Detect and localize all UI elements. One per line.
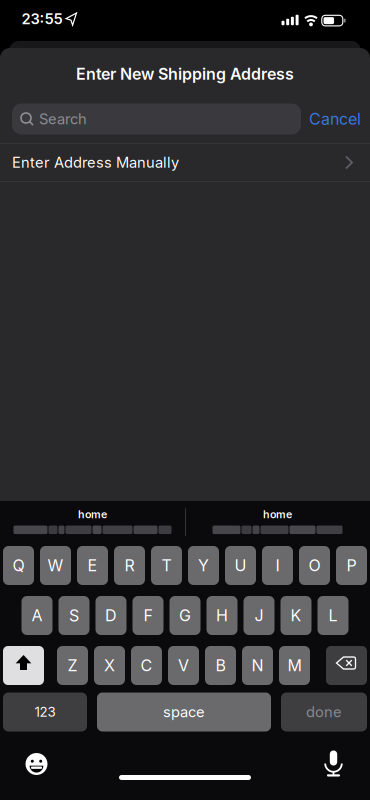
button[interactable]: P <box>336 546 367 585</box>
button[interactable]: C <box>131 646 162 685</box>
button[interactable]: Cancel <box>309 110 361 128</box>
staticText: H <box>216 606 228 625</box>
button[interactable]: Z <box>57 646 88 685</box>
button[interactable]: Q <box>3 546 34 585</box>
button[interactable]: J <box>243 596 274 635</box>
staticText: E <box>87 556 97 575</box>
staticText: O <box>308 556 320 575</box>
button[interactable]: B <box>205 646 236 685</box>
button[interactable]: U <box>225 546 256 585</box>
button[interactable]: 123 <box>3 692 87 731</box>
button[interactable]: I <box>262 546 293 585</box>
button[interactable]: L <box>317 596 348 635</box>
button[interactable]: Search <box>12 103 301 134</box>
button[interactable]: X <box>94 646 125 685</box>
staticText: N <box>251 656 263 675</box>
staticText: Z <box>67 656 77 675</box>
button[interactable]: R <box>114 546 145 585</box>
staticText: done <box>306 703 342 721</box>
button[interactable]: W <box>40 546 71 585</box>
staticText: Enter Address Manually <box>12 154 179 171</box>
staticText: Search <box>39 110 87 128</box>
staticText: T <box>161 556 171 575</box>
button[interactable]: E <box>77 546 108 585</box>
button[interactable]: Delete <box>326 646 367 685</box>
staticText: Q <box>12 556 24 575</box>
button[interactable]: H <box>206 596 237 635</box>
staticText: J <box>254 606 263 625</box>
button[interactable]: Enter Address Manually <box>0 144 370 181</box>
staticText: M <box>287 656 301 675</box>
staticText: F <box>143 606 152 625</box>
staticText: home <box>263 508 292 521</box>
button[interactable]: Shift <box>3 646 44 685</box>
staticText: 23:55 <box>21 10 62 28</box>
staticText: L <box>328 606 337 625</box>
staticText: R <box>124 556 134 575</box>
button[interactable]: home address suggestion <box>5 500 180 542</box>
staticText: K <box>290 606 301 625</box>
button[interactable]: home address suggestion <box>190 500 365 542</box>
button[interactable]: F <box>132 596 163 635</box>
button[interactable]: G <box>169 596 200 635</box>
staticText: space <box>163 703 205 721</box>
button[interactable]: Y <box>188 546 219 585</box>
staticText: W <box>47 556 63 575</box>
button[interactable]: space <box>97 692 271 731</box>
button[interactable]: M <box>279 646 310 685</box>
staticText: C <box>140 656 152 675</box>
staticText: G <box>179 606 191 625</box>
staticText: Y <box>198 556 209 575</box>
staticText: Enter New Shipping Address <box>76 65 294 83</box>
button[interactable]: Dictate <box>321 750 345 777</box>
button[interactable]: T <box>151 546 182 585</box>
staticText: home <box>78 508 107 521</box>
button[interactable]: Emoji <box>25 752 48 775</box>
staticText: P <box>346 556 356 575</box>
button[interactable]: N <box>242 646 273 685</box>
staticText: S <box>69 606 79 625</box>
staticText: Cancel <box>309 110 361 128</box>
staticText: A <box>31 606 42 625</box>
button[interactable]: S <box>58 596 89 635</box>
staticText: I <box>275 556 279 575</box>
staticText: D <box>105 606 117 625</box>
button[interactable]: K <box>280 596 311 635</box>
staticText: X <box>104 656 115 675</box>
staticText: B <box>215 656 225 675</box>
button[interactable]: D <box>95 596 126 635</box>
staticText: 123 <box>34 704 55 720</box>
button[interactable]: O <box>299 546 330 585</box>
staticText: V <box>178 656 189 675</box>
button[interactable]: V <box>168 646 199 685</box>
staticText: U <box>234 556 246 575</box>
button[interactable]: A <box>21 596 52 635</box>
button[interactable]: done <box>281 692 367 731</box>
